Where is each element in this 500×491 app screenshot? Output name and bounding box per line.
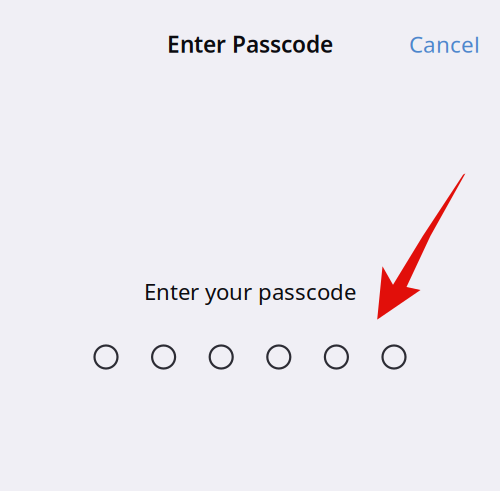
- staticText: Cancel: [409, 29, 480, 59]
- staticText: Enter Passcode: [167, 29, 333, 59]
- button[interactable]: Cancel: [399, 21, 490, 67]
- staticText: Enter your passcode: [144, 276, 356, 306]
